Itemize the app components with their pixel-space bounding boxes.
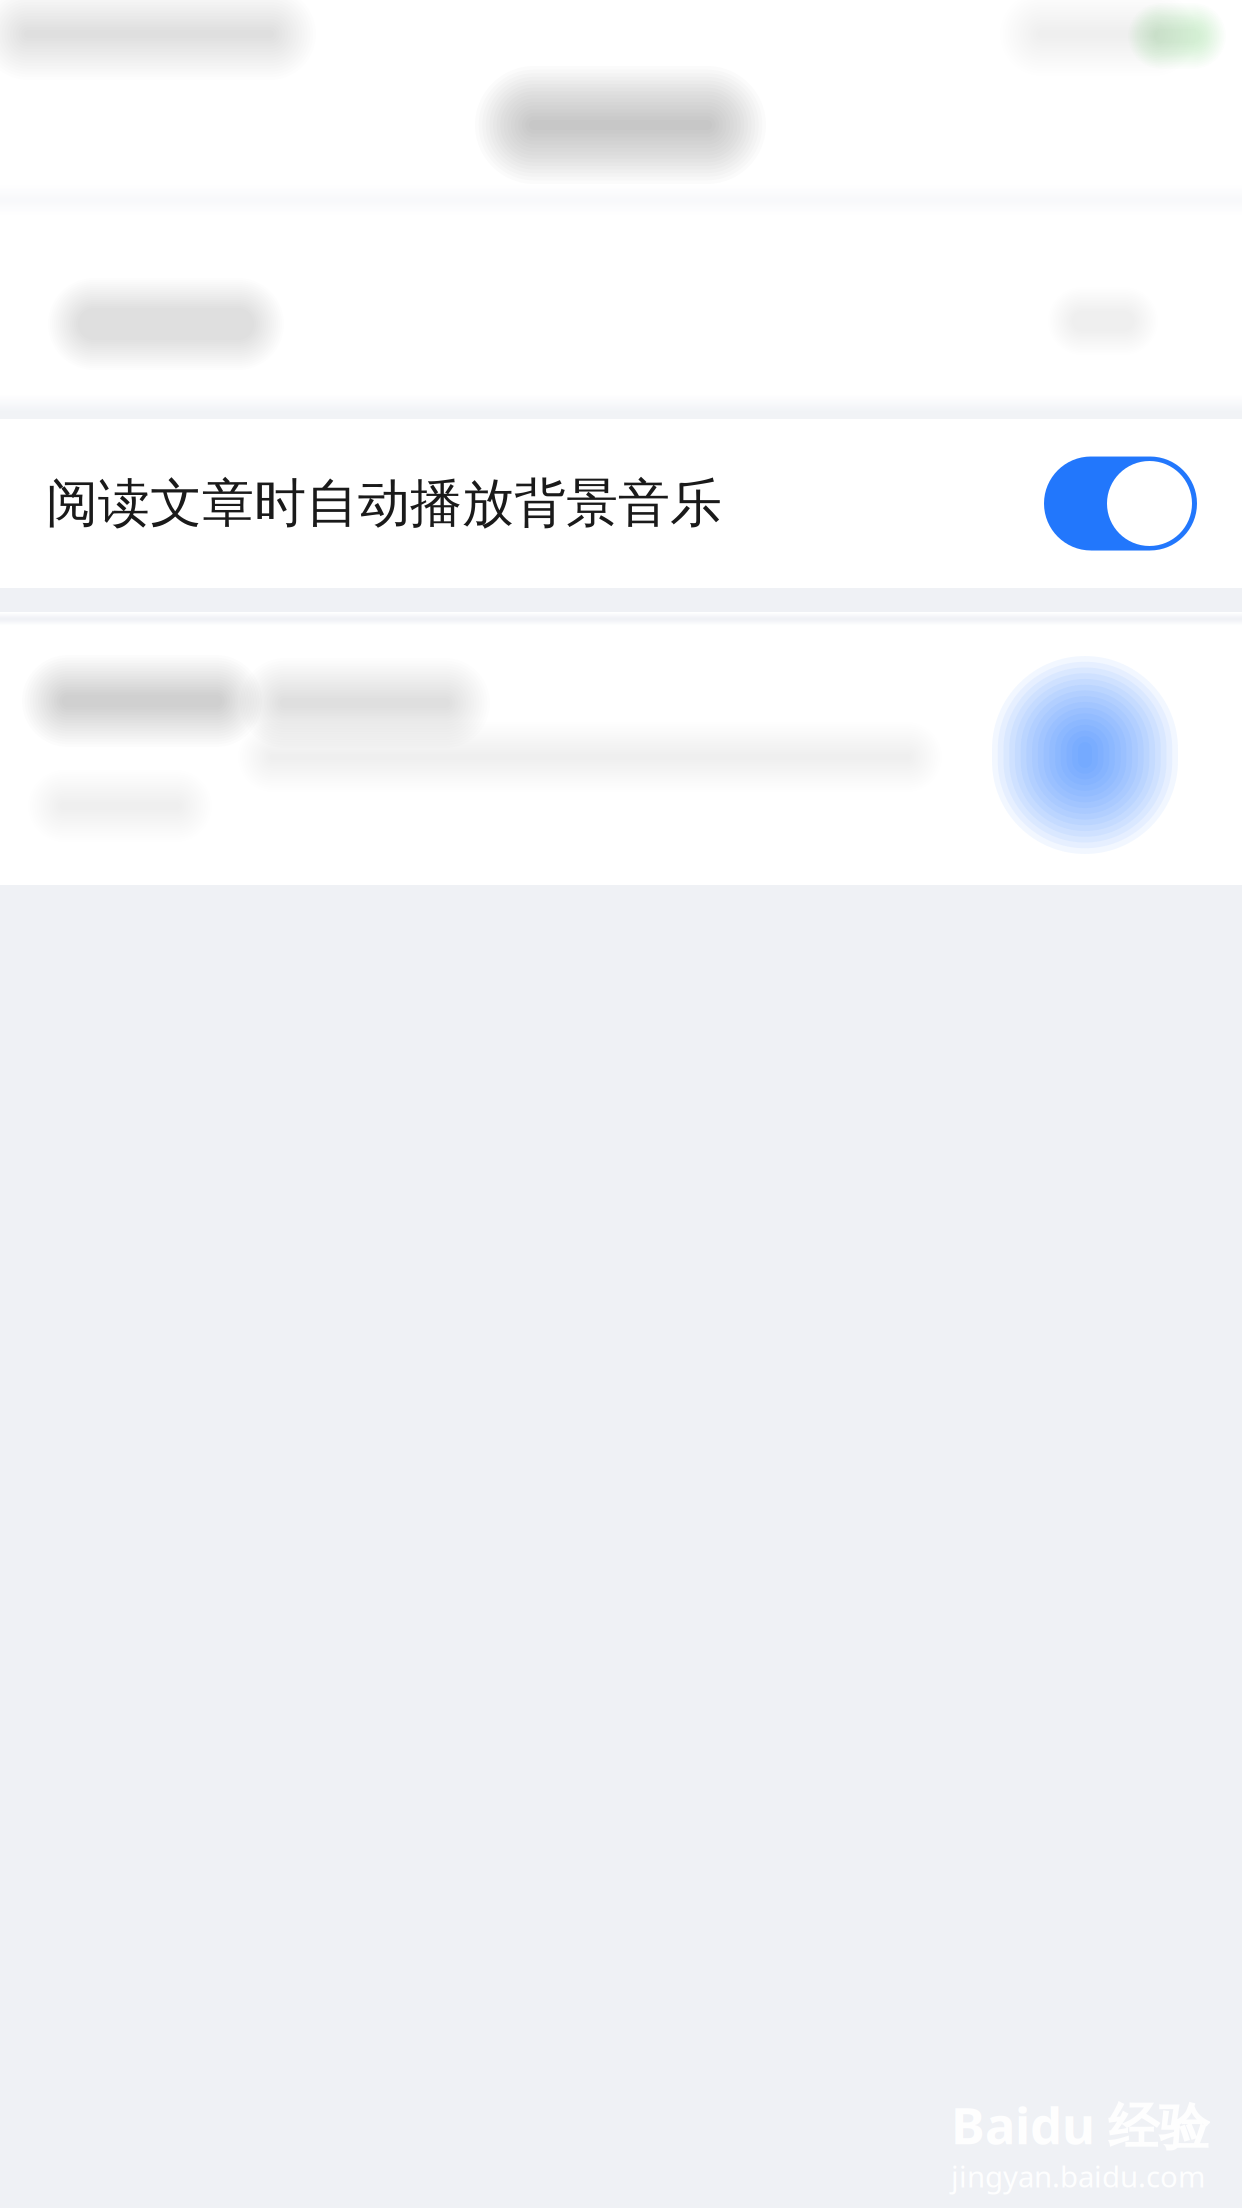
staticText: Baidu 经验 [951, 2091, 1210, 2158]
button[interactable]: 阅读文章时自动播放背景音乐 [0, 419, 1242, 588]
staticText: 阅读文章时自动播放背景音乐 [46, 472, 722, 535]
staticText: jingyan.baidu.com [951, 2156, 1205, 2195]
